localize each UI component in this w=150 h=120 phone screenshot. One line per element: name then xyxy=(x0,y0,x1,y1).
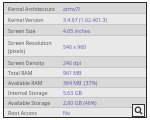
staticText: 4,65 inches xyxy=(63,27,91,34)
staticText: Kernel Architecture xyxy=(8,5,55,12)
button[interactable]: Screen Size xyxy=(4,25,146,35)
staticText: No xyxy=(63,109,71,116)
staticText: armv7l xyxy=(63,5,80,12)
staticText: Available Storage xyxy=(8,99,51,106)
button[interactable]: Internal Storage xyxy=(4,88,146,97)
staticText: 240 dpi xyxy=(63,59,81,66)
staticText: 540 x 960 xyxy=(63,43,87,50)
staticText: Screen Density xyxy=(8,59,45,66)
staticText: Total RAM xyxy=(8,69,33,76)
button[interactable]: Kernel Version xyxy=(4,14,146,24)
staticText: Internal Storage xyxy=(8,89,48,96)
button[interactable]: Available Storage xyxy=(4,98,146,107)
button[interactable]: Root Access xyxy=(4,108,146,117)
button[interactable]: Screen Density xyxy=(4,57,146,67)
staticText: (pixels) xyxy=(8,47,26,54)
staticText: Screen Size xyxy=(8,27,36,34)
button[interactable]: Kernel Architecture xyxy=(4,3,146,13)
staticText: 961 MB xyxy=(63,69,82,76)
staticText: 2,60 GB (46%) xyxy=(63,99,97,106)
staticText: Kernel Version xyxy=(8,16,44,23)
staticText: Available RAM xyxy=(8,79,43,86)
button[interactable]: Total RAM xyxy=(4,68,146,77)
staticText: Screen Resolution xyxy=(8,39,52,46)
button[interactable]: Search xyxy=(132,104,145,117)
staticText: Root Access xyxy=(8,109,37,116)
button[interactable]: Screen Resolution xyxy=(4,36,146,56)
staticText: 364 MB (37%) xyxy=(63,79,98,86)
staticText: 5,63 GB xyxy=(63,89,82,96)
staticText: 3.4.67 (1.02.401.3) xyxy=(63,16,108,23)
button[interactable]: Available RAM xyxy=(4,78,146,87)
